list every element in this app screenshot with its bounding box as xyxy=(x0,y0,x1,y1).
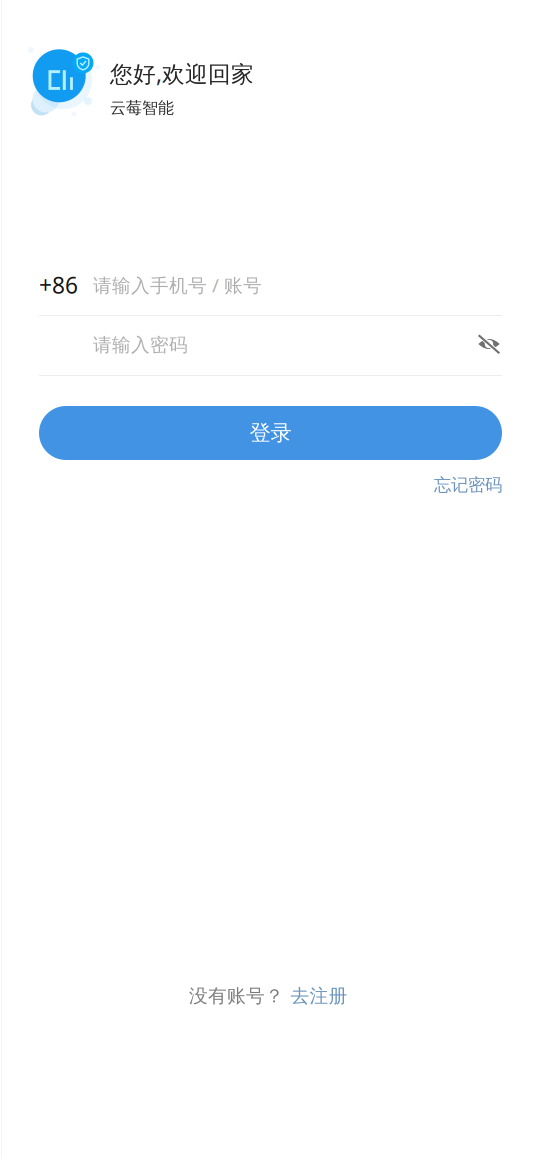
staticText: +86 xyxy=(39,270,78,300)
staticText: 去注册 xyxy=(290,984,347,1007)
button[interactable]: 请输入密码 xyxy=(93,320,463,370)
button[interactable]: 去注册 xyxy=(283,979,355,1013)
staticText: 没有账号？ xyxy=(189,984,284,1007)
button[interactable]: 登录 xyxy=(39,406,502,460)
button[interactable]: 选择国家区号 +86 xyxy=(39,260,85,310)
staticText: 忘记密码 xyxy=(434,474,502,496)
staticText: 请输入手机号 / 账号 xyxy=(93,273,262,297)
button[interactable]: 请输入手机号 / 账号 xyxy=(93,260,502,310)
staticText: 请输入密码 xyxy=(93,333,188,356)
staticText: 登录 xyxy=(249,420,291,446)
button[interactable]: 忘记密码 xyxy=(382,470,502,500)
staticText: 您好,欢迎回家 xyxy=(110,58,254,88)
staticText: 云莓智能 xyxy=(110,98,174,118)
button[interactable]: 显示密码 xyxy=(467,322,511,366)
